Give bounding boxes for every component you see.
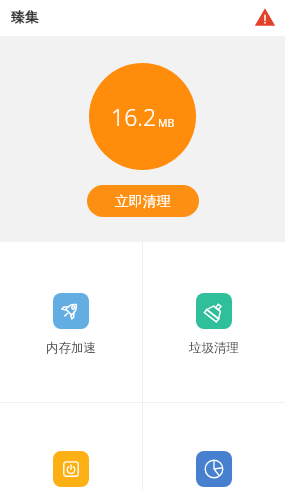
button[interactable]: 16.2 — [89, 63, 196, 170]
staticText: 立即清理 — [115, 193, 171, 210]
button[interactable] — [0, 403, 142, 490]
staticText: 垃圾清理 — [189, 340, 239, 356]
button[interactable]: 立即清理 — [87, 185, 199, 217]
staticText: MB — [158, 116, 175, 130]
button[interactable] — [143, 403, 285, 490]
staticText: 16.2 — [111, 101, 157, 132]
button[interactable]: 内存加速 — [0, 242, 142, 402]
staticText: 内存加速 — [46, 340, 96, 356]
staticText: 臻集 — [11, 9, 39, 27]
button[interactable]: Warning — [252, 5, 278, 31]
button[interactable]: 垃圾清理 — [143, 242, 285, 402]
